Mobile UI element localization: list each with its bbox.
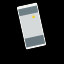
button[interactable]: Add: [32, 15, 35, 19]
